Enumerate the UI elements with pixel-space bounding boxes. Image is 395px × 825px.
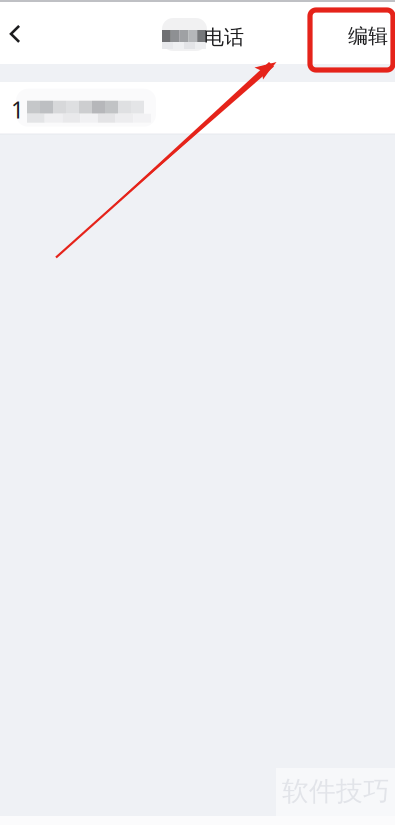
staticText: 电话 xyxy=(204,25,244,50)
staticText: 1 xyxy=(11,95,24,125)
staticText: 软件技巧 xyxy=(282,775,390,808)
button[interactable]: 返回 xyxy=(0,12,37,56)
button[interactable]: 1 xyxy=(0,82,395,134)
staticText: 编辑 xyxy=(348,24,388,48)
button[interactable]: 编辑 xyxy=(337,14,395,58)
